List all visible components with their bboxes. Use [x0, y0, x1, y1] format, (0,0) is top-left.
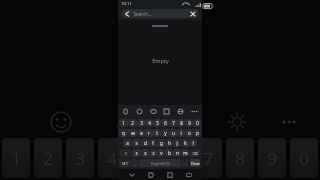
staticText: 5 — [156, 120, 159, 126]
staticText: . — [185, 161, 187, 166]
staticText: 7 — [203, 147, 213, 170]
staticText: 5 — [139, 147, 149, 170]
button[interactable]: 0 — [193, 119, 201, 127]
staticText: y — [164, 130, 167, 136]
button[interactable]: Toolbar action 1 — [121, 107, 130, 116]
button[interactable]: Toolbar action 4 — [162, 107, 171, 116]
button[interactable]: j — [173, 139, 181, 147]
button[interactable]: p — [193, 129, 201, 137]
staticText: o — [188, 130, 191, 136]
button[interactable]: b — [165, 149, 173, 157]
button[interactable]: English(US) — [139, 159, 181, 167]
button[interactable]: Toolbar action 6 — [190, 107, 199, 116]
staticText: 8 — [235, 147, 245, 170]
button[interactable]: Clear — [190, 11, 196, 17]
staticText: 6 — [164, 120, 167, 126]
button[interactable]: z — [132, 149, 141, 157]
staticText: w — [131, 130, 135, 136]
button[interactable]: 6 — [161, 119, 169, 127]
button[interactable]: g — [157, 139, 165, 147]
button[interactable]: Back — [121, 9, 199, 18]
staticText: t — [156, 130, 158, 136]
staticText: b — [168, 150, 171, 156]
staticText: 8 — [180, 120, 183, 126]
button[interactable]: 3 — [137, 119, 145, 127]
staticText: z — [135, 150, 138, 156]
staticText: a — [126, 140, 129, 146]
button[interactable]: Symbols — [119, 159, 131, 167]
staticText: p — [196, 130, 199, 136]
button[interactable]: Done — [190, 159, 200, 167]
staticText: 1 — [11, 147, 21, 170]
button[interactable]: t — [153, 129, 161, 137]
button[interactable]: q — [119, 129, 128, 137]
staticText: Empty — [152, 57, 169, 64]
button[interactable]: Keyboard — [183, 169, 194, 180]
staticText: h — [168, 140, 171, 146]
button[interactable]: Recents — [164, 169, 175, 180]
staticText: n — [176, 150, 179, 156]
button[interactable]: Toolbar action 5 — [176, 107, 185, 116]
button[interactable]: f — [149, 139, 157, 147]
staticText: i — [180, 130, 182, 136]
button[interactable]: m — [181, 149, 189, 157]
staticText: r — [148, 130, 150, 136]
staticText: d — [144, 140, 147, 146]
button[interactable]: 7 — [169, 119, 177, 127]
staticText: 3 — [140, 120, 143, 126]
button[interactable]: Shift — [119, 149, 132, 157]
staticText: f — [152, 140, 154, 146]
button[interactable]: 9 — [185, 119, 193, 127]
button[interactable]: v — [157, 149, 165, 157]
button[interactable]: d — [141, 139, 149, 147]
button[interactable]: Back — [126, 169, 137, 180]
staticText: , — [134, 161, 136, 166]
staticText: 0 — [196, 120, 199, 126]
button[interactable]: r — [145, 129, 153, 137]
button[interactable]: 1 — [119, 119, 128, 127]
button[interactable]: k — [181, 139, 189, 147]
button[interactable]: Period — [182, 159, 189, 167]
staticText: 4 — [148, 120, 151, 126]
button[interactable]: s — [132, 139, 141, 147]
button[interactable]: Back — [124, 11, 130, 17]
button[interactable]: Comma — [131, 159, 138, 167]
staticText: j — [176, 140, 178, 146]
staticText: English(US) — [151, 161, 170, 166]
staticText: l — [192, 140, 194, 146]
staticText: ⌫ — [192, 151, 198, 156]
button[interactable]: c — [149, 149, 157, 157]
staticText: !#1 — [122, 161, 128, 166]
staticText: Search... — [133, 11, 152, 17]
button[interactable]: x — [141, 149, 149, 157]
button[interactable]: l — [189, 139, 197, 147]
staticText: 4 — [107, 147, 117, 170]
staticText: Done — [191, 161, 200, 166]
button[interactable]: e — [137, 129, 145, 137]
staticText: 6 — [171, 147, 181, 170]
staticText: e — [140, 130, 143, 136]
staticText: m — [183, 150, 188, 156]
button[interactable]: 5 — [153, 119, 161, 127]
staticText: s — [135, 140, 138, 146]
button[interactable]: Toolbar action 2 — [135, 107, 144, 116]
button[interactable]: y — [161, 129, 169, 137]
button[interactable]: 8 — [177, 119, 185, 127]
button[interactable]: h — [165, 139, 173, 147]
staticText: k — [184, 140, 187, 146]
button[interactable]: n — [173, 149, 181, 157]
button[interactable]: w — [128, 129, 137, 137]
button[interactable]: i — [177, 129, 185, 137]
button[interactable]: 4 — [145, 119, 153, 127]
staticText: v — [160, 150, 163, 156]
button[interactable]: a — [123, 139, 132, 147]
staticText: 9 — [188, 120, 191, 126]
button[interactable]: o — [185, 129, 193, 137]
button[interactable]: Backspace — [189, 149, 201, 157]
button[interactable]: Toolbar action 3 — [149, 107, 158, 116]
button[interactable]: 2 — [128, 119, 137, 127]
staticText: 2 — [131, 120, 134, 126]
button[interactable]: Home — [145, 169, 156, 180]
staticText: 9 — [267, 147, 277, 170]
button[interactable]: u — [169, 129, 177, 137]
